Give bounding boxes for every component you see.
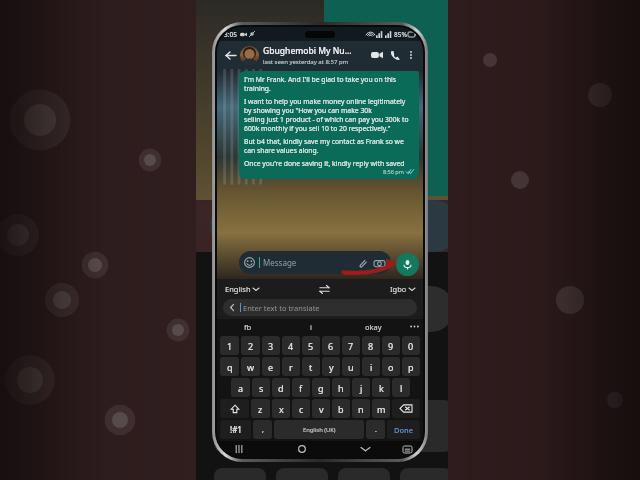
button[interactable]: q <box>220 357 239 376</box>
staticText: Gbughemobi My Nu... <box>263 45 352 57</box>
staticText: 7 <box>348 340 354 352</box>
button[interactable]: e <box>262 357 280 376</box>
button[interactable]: c <box>292 399 310 418</box>
button[interactable]: i <box>279 319 342 334</box>
button[interactable]: 8 <box>362 336 380 355</box>
staticText: y <box>329 361 334 373</box>
button[interactable]: b <box>332 399 350 418</box>
button[interactable]: Back <box>222 47 238 63</box>
button[interactable]: u <box>342 357 360 376</box>
button[interactable]: Hide keyboard <box>357 441 373 457</box>
button[interactable]: s <box>252 378 270 397</box>
staticText: k <box>379 382 384 394</box>
button[interactable]: English (UK) <box>274 420 364 439</box>
staticText: o <box>388 361 394 373</box>
button[interactable]: l <box>392 378 410 397</box>
button[interactable]: okay <box>342 319 405 334</box>
staticText: But b4 that, kindly save my contact as F… <box>244 137 414 155</box>
staticText: 5 <box>308 340 314 352</box>
button[interactable]: More suggestions <box>405 319 423 334</box>
button[interactable]: Keyboard settings <box>399 441 415 457</box>
staticText: n <box>358 403 364 415</box>
button[interactable]: Voice call <box>386 46 404 64</box>
button[interactable]: Recents <box>231 441 247 457</box>
staticText: 4 <box>288 340 294 352</box>
button[interactable]: 7 <box>342 336 360 355</box>
button[interactable]: t <box>302 357 320 376</box>
button[interactable]: w <box>241 357 260 376</box>
button[interactable]: i <box>362 357 380 376</box>
button[interactable]: Message <box>239 251 391 274</box>
staticText: Igbo <box>390 284 407 294</box>
button[interactable]: m <box>372 399 390 418</box>
staticText: p <box>408 361 414 373</box>
button[interactable]: fb <box>217 319 279 334</box>
button[interactable]: p <box>402 357 420 376</box>
button[interactable]: More options <box>404 48 418 62</box>
staticText: q <box>227 361 233 373</box>
button[interactable]: k <box>372 378 390 397</box>
staticText: 8 <box>368 340 374 352</box>
button[interactable]: Swap languages <box>317 282 331 296</box>
button[interactable]: !#1 <box>220 420 251 439</box>
button[interactable]: I'm Mr Frank. And I'll be glad to take y… <box>239 71 419 179</box>
button[interactable]: 4 <box>282 336 300 355</box>
staticText: Once you're done saving it, kindly reply… <box>244 159 405 168</box>
staticText: I want to help you make money online leg… <box>244 97 414 115</box>
staticText: d <box>278 382 284 394</box>
staticText: . <box>375 425 377 435</box>
staticText: v <box>319 403 324 415</box>
staticText: last seen yesterday at 8:57 pm <box>263 58 349 66</box>
staticText: 8:56 pm <box>383 168 404 175</box>
button[interactable]: Video call <box>368 46 386 64</box>
button[interactable]: . <box>366 420 385 439</box>
button[interactable]: x <box>272 399 290 418</box>
button[interactable]: Camera <box>372 256 386 270</box>
button[interactable]: Attach <box>355 256 369 270</box>
button[interactable]: Voice message <box>396 253 419 276</box>
button[interactable]: Shift <box>220 399 249 418</box>
staticText: r <box>289 361 293 373</box>
button[interactable]: 6 <box>322 336 340 355</box>
staticText: 9 <box>388 340 394 352</box>
button[interactable]: 0 <box>402 336 420 355</box>
button[interactable]: j <box>352 378 370 397</box>
button[interactable] <box>240 46 259 65</box>
button[interactable]: z <box>251 399 270 418</box>
staticText: selling just 1 product - of which can pa… <box>244 115 414 133</box>
staticText: g <box>318 382 324 394</box>
staticText: 0 <box>408 340 414 352</box>
staticText: f <box>299 382 303 394</box>
button[interactable]: 1 <box>220 336 239 355</box>
staticText: z <box>258 403 263 415</box>
button[interactable]: f <box>292 378 310 397</box>
button[interactable]: v <box>312 399 330 418</box>
button[interactable]: d <box>272 378 290 397</box>
button[interactable]: h <box>332 378 350 397</box>
button[interactable]: , <box>253 420 272 439</box>
staticText: t <box>309 361 313 373</box>
staticText: u <box>348 361 354 373</box>
button[interactable]: 5 <box>302 336 320 355</box>
button[interactable]: Igbo <box>388 283 417 295</box>
button[interactable]: Backspace <box>392 399 420 418</box>
staticText: w <box>247 361 255 373</box>
button[interactable]: g <box>312 378 330 397</box>
button[interactable]: Home <box>294 441 310 457</box>
button[interactable]: 9 <box>382 336 400 355</box>
staticText: x <box>279 403 284 415</box>
button[interactable]: Enter text to translate <box>223 299 417 316</box>
button[interactable]: Done <box>387 420 420 439</box>
staticText: j <box>360 382 363 394</box>
staticText: b <box>338 403 344 415</box>
button[interactable]: y <box>322 357 340 376</box>
button[interactable]: n <box>352 399 370 418</box>
button[interactable]: 2 <box>241 336 260 355</box>
staticText: 2 <box>248 340 254 352</box>
button[interactable]: 3 <box>262 336 280 355</box>
button[interactable]: English <box>223 283 261 295</box>
button[interactable]: a <box>231 378 250 397</box>
button[interactable]: o <box>382 357 400 376</box>
button[interactable]: r <box>282 357 300 376</box>
staticText: 1 <box>227 340 233 352</box>
